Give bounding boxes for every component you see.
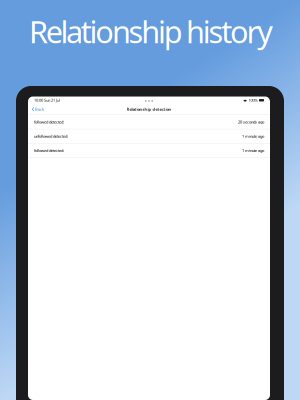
staticText: Relationship history <box>29 11 273 52</box>
staticText: 1 minute ago <box>242 148 264 153</box>
staticText: 10:00 Sun 21 Jul <box>34 98 60 103</box>
button[interactable]: unfollowed detected: <box>28 129 270 144</box>
staticText: Back <box>35 107 44 112</box>
staticText: 20 seconds ago <box>238 119 264 124</box>
staticText: 1 minute ago <box>242 133 264 139</box>
staticText: unfollowed detected: <box>34 133 68 139</box>
staticText: Relationship detection <box>126 107 171 112</box>
button[interactable]: Back <box>28 104 47 114</box>
staticText: 100% <box>249 98 258 103</box>
staticText: followed detected: <box>34 148 64 153</box>
button[interactable]: followed detected: <box>28 144 270 158</box>
staticText: followed detected: <box>34 119 64 124</box>
button[interactable]: followed detected: <box>28 115 270 129</box>
